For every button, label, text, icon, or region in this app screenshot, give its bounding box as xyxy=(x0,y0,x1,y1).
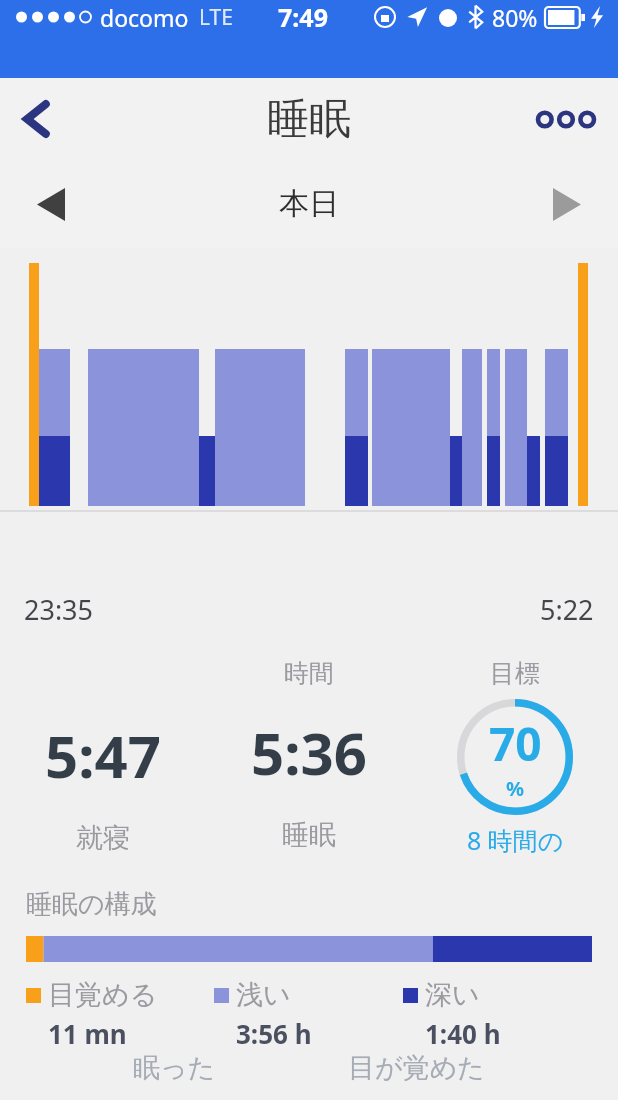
staticText: 11 mn xyxy=(48,1016,127,1051)
staticText: docomo xyxy=(100,2,189,33)
button[interactable]: 浅い xyxy=(214,978,403,1051)
staticText: % xyxy=(506,775,525,802)
staticText: LTE xyxy=(199,3,233,32)
staticText: 深い xyxy=(425,978,480,1012)
staticText: 7:49 xyxy=(278,0,328,34)
staticText: 70 xyxy=(489,712,542,775)
staticText: 浅い xyxy=(236,978,291,1012)
staticText: 就寝 xyxy=(76,821,130,855)
staticText: 睡眠 xyxy=(282,818,336,852)
button[interactable]: 目が覚めた xyxy=(348,1051,485,1084)
staticText: 3:56 h xyxy=(236,1016,312,1051)
button[interactable]: 目覚める xyxy=(26,978,214,1051)
staticText: 8 時間の xyxy=(467,823,564,857)
staticText: 5:22 xyxy=(540,591,594,628)
button[interactable]: Next day xyxy=(534,171,600,237)
staticText: 80% xyxy=(492,2,538,33)
staticText: 5:36 xyxy=(251,713,367,792)
staticText: 目標 xyxy=(490,658,540,689)
button[interactable]: Previous day xyxy=(18,171,84,237)
staticText: 睡眠 xyxy=(267,93,351,146)
staticText: 目覚める xyxy=(48,978,158,1012)
staticText: 睡眠の構成 xyxy=(26,888,157,921)
button[interactable]: Back xyxy=(4,87,68,151)
staticText: 1:40 h xyxy=(425,1016,501,1051)
staticText: 23:35 xyxy=(24,591,94,628)
button[interactable]: 深い xyxy=(403,978,592,1051)
staticText: 時間 xyxy=(284,658,334,689)
button[interactable]: 眠った xyxy=(133,1051,216,1084)
staticText: 本日 xyxy=(279,185,339,223)
staticText: 5:47 xyxy=(45,716,161,795)
button[interactable]: More options xyxy=(524,92,608,146)
